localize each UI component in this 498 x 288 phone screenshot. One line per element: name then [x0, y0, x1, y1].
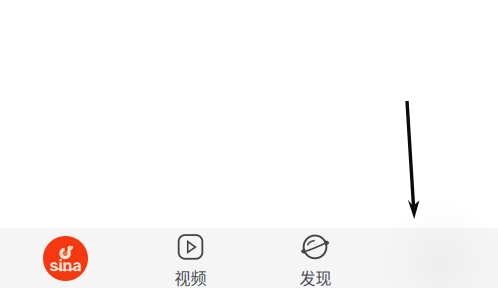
button[interactable]: 视频 [148, 231, 232, 288]
staticText: sina [49, 256, 81, 275]
staticText: 发现 [299, 266, 331, 288]
staticText: 视频 [174, 266, 206, 288]
button[interactable]: 微博 [23, 228, 107, 288]
button[interactable]: 发现 [273, 231, 357, 288]
